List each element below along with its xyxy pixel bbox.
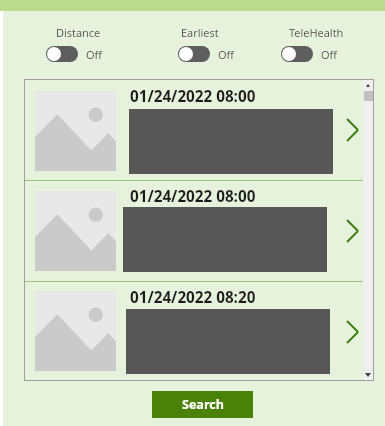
staticText: Earliest	[181, 25, 219, 40]
staticText: 01/24/2022 08:00	[130, 186, 256, 207]
staticText: Off	[218, 47, 235, 62]
staticText: Search	[182, 396, 224, 413]
button[interactable]: Search	[152, 391, 253, 418]
other: Open details	[346, 219, 359, 243]
staticText: 01/24/2022 08:00	[130, 86, 256, 107]
button[interactable]: Toggle off	[281, 46, 313, 62]
button[interactable]: Toggle off	[178, 46, 210, 62]
other: Open details	[346, 118, 359, 142]
button[interactable]: 01/24/2022 08:00	[25, 80, 363, 180]
button[interactable]: Toggle off	[46, 46, 78, 62]
button[interactable]: 01/24/2022 08:20	[25, 282, 363, 380]
other: Scroll down	[365, 373, 371, 377]
staticText: Distance	[56, 25, 101, 40]
staticText: TeleHealth	[289, 25, 344, 40]
button[interactable]: 01/24/2022 08:00	[25, 181, 363, 281]
staticText: 01/24/2022 08:20	[130, 287, 256, 308]
other: Scroll up	[366, 84, 370, 87]
staticText: Off	[86, 47, 103, 62]
other: Open details	[346, 320, 359, 344]
staticText: Off	[321, 47, 338, 62]
